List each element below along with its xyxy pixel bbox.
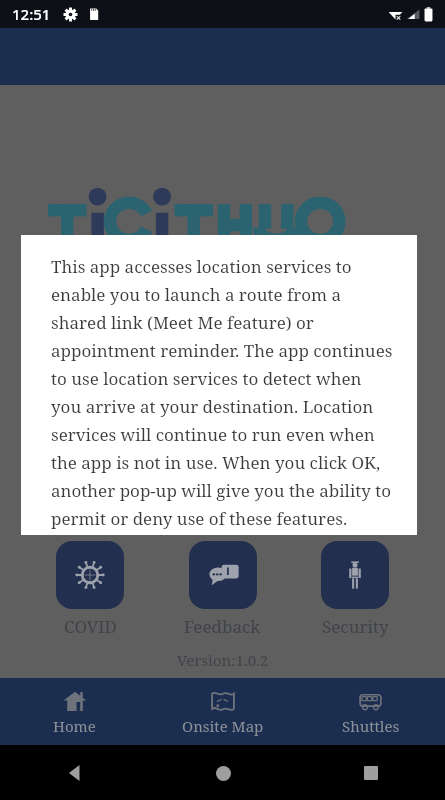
button[interactable]: Security bbox=[317, 541, 393, 638]
staticText: This app accesses location services to e… bbox=[51, 255, 393, 530]
button[interactable]: Feedback bbox=[180, 541, 265, 638]
button[interactable]: COVID bbox=[52, 541, 128, 638]
staticText: Onsite Map bbox=[182, 716, 264, 736]
staticText: Version:1.0.2 bbox=[177, 650, 269, 670]
button[interactable]: Home bbox=[0, 682, 149, 742]
staticText: 12:51 bbox=[12, 4, 51, 24]
staticText: Shuttles bbox=[342, 716, 400, 736]
button[interactable]: Onsite Map bbox=[149, 682, 297, 742]
staticText: Feedback bbox=[184, 615, 261, 638]
button[interactable]: Shuttles bbox=[297, 682, 445, 742]
staticText: Security bbox=[322, 615, 389, 638]
button[interactable]: Home bbox=[203, 753, 243, 793]
staticText: Home bbox=[53, 716, 96, 736]
button[interactable]: Back bbox=[55, 753, 95, 793]
staticText: COVID bbox=[64, 615, 117, 638]
button[interactable]: Recent apps bbox=[351, 753, 391, 793]
